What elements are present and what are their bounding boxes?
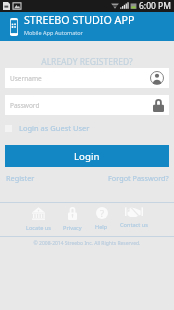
button[interactable]: Password: [5, 95, 169, 115]
button[interactable]: Contact us: [120, 207, 148, 229]
button[interactable]: Privacy: [63, 207, 82, 232]
button[interactable]: Login: [5, 145, 169, 167]
button[interactable]: ?: [95, 207, 108, 231]
button[interactable]: Locate us: [26, 207, 51, 232]
staticText: Privacy: [63, 224, 82, 232]
button[interactable]: Register: [6, 173, 35, 183]
staticText: Password: [10, 101, 40, 110]
staticText: 6:00 PM: [139, 0, 171, 12]
button[interactable]: Forgot Password?: [108, 173, 169, 183]
staticText: Help: [95, 223, 108, 231]
staticText: Login as Guest User: [19, 123, 90, 133]
button[interactable]: Login as Guest User: [5, 122, 90, 134]
staticText: Mobile App Automator: [24, 29, 83, 36]
staticText: Username: [10, 74, 42, 83]
staticText: STREEBO STUDIO APP: [24, 13, 135, 28]
staticText: © 2008-2014 Streebo Inc. All Rights Rese…: [0, 240, 174, 247]
staticText: Contact us: [120, 221, 148, 229]
staticText: Locate us: [26, 224, 51, 232]
button[interactable]: Username: [5, 68, 169, 88]
staticText: ?: [100, 207, 105, 219]
staticText: ALREADY REGISTERED?: [0, 56, 174, 68]
staticText: Login: [74, 150, 100, 163]
